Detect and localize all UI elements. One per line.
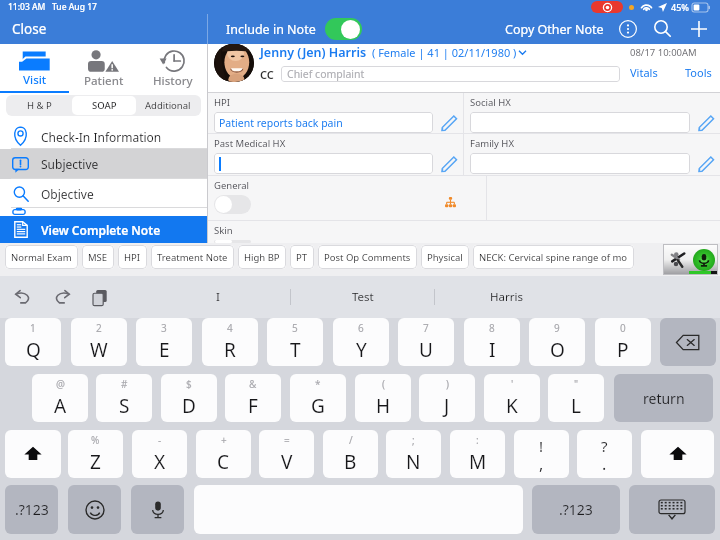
- button[interactable]: Visit: [0, 44, 69, 93]
- button[interactable]: /: [323, 430, 378, 478]
- button[interactable]: PT: [290, 245, 314, 269]
- staticText: Patient reports back pain: [219, 116, 343, 130]
- button[interactable]: Vitals: [630, 65, 658, 80]
- button[interactable]: Normal Exam: [5, 245, 78, 269]
- button[interactable]: #: [96, 374, 152, 422]
- button[interactable]: History: [138, 44, 207, 93]
- button[interactable]: .?123: [532, 485, 620, 534]
- button[interactable]: &: [225, 374, 281, 422]
- button[interactable]: Skin toggle: [214, 240, 251, 243]
- button[interactable]: (: [355, 374, 411, 422]
- staticText: ): [446, 377, 449, 391]
- staticText: +: [221, 433, 227, 447]
- staticText: Objective: [41, 186, 94, 202]
- staticText: #: [121, 377, 128, 391]
- button[interactable]: 2: [71, 318, 127, 366]
- button[interactable]: Dictation: [663, 244, 718, 275]
- button[interactable]: More options: [618, 19, 638, 39]
- staticText: PT: [296, 251, 308, 264]
- button[interactable]: 6: [333, 318, 389, 366]
- button[interactable]: Edit Past Medical HX: [439, 154, 459, 174]
- button[interactable]: Edit Family HX: [696, 154, 716, 174]
- button[interactable]: 4: [202, 318, 258, 366]
- button[interactable]: +: [196, 430, 251, 478]
- button[interactable]: 5: [267, 318, 323, 366]
- button[interactable]: 3: [136, 318, 192, 366]
- button[interactable]: Paste: [88, 286, 110, 308]
- staticText: Physical: [427, 251, 463, 264]
- button[interactable]: return: [614, 374, 713, 422]
- button[interactable]: Include in Note: [222, 15, 366, 43]
- button[interactable]: Edit HPI: [439, 113, 459, 133]
- staticText: F: [248, 393, 258, 419]
- button[interactable]: *: [290, 374, 346, 422]
- button[interactable]: $: [161, 374, 217, 422]
- button[interactable]: !: [514, 430, 569, 478]
- button[interactable]: [470, 153, 690, 174]
- staticText: MSE: [88, 251, 108, 264]
- button[interactable]: ): [419, 374, 475, 422]
- staticText: return: [643, 389, 685, 408]
- button[interactable]: Shift: [5, 430, 61, 478]
- button[interactable]: Objective: [0, 179, 207, 208]
- button[interactable]: Shift: [641, 430, 714, 478]
- button[interactable]: 7: [398, 318, 454, 366]
- button[interactable]: Test: [291, 276, 434, 318]
- button[interactable]: 1: [5, 318, 61, 366]
- button[interactable]: Post Op Comments: [318, 245, 417, 269]
- button[interactable]: .?123: [5, 485, 58, 534]
- button[interactable]: @: [32, 374, 88, 422]
- staticText: 3: [161, 321, 167, 335]
- button[interactable]: Dictate: [131, 485, 184, 534]
- button[interactable]: ?: [577, 430, 632, 478]
- button[interactable]: Chief complaint: [281, 66, 620, 82]
- button[interactable]: ": [548, 374, 604, 422]
- button[interactable]: Patient reports back pain: [214, 112, 433, 133]
- button[interactable]: Backspace: [660, 318, 716, 366]
- button[interactable]: SOAP: [72, 96, 136, 115]
- button[interactable]: Hide keyboard: [629, 485, 715, 534]
- staticText: M: [469, 449, 487, 475]
- button[interactable]: Check-In Information: [0, 124, 207, 149]
- button[interactable]: ': [484, 374, 540, 422]
- button[interactable]: HPI: [118, 245, 147, 269]
- staticText: P: [617, 337, 629, 363]
- button[interactable]: Tools: [685, 65, 712, 80]
- button[interactable]: Harris: [435, 276, 578, 318]
- button[interactable]: Physical: [421, 245, 469, 269]
- button[interactable]: I: [146, 276, 290, 318]
- staticText: U: [419, 337, 433, 363]
- button[interactable]: [470, 112, 690, 133]
- button[interactable]: Patient: [69, 44, 138, 93]
- staticText: 0: [620, 321, 626, 335]
- button[interactable]: :: [450, 430, 505, 478]
- button[interactable]: 0: [595, 318, 651, 366]
- button[interactable]: Add: [688, 18, 710, 40]
- button[interactable]: 8: [464, 318, 520, 366]
- button[interactable]: Additional: [136, 96, 200, 115]
- staticText: 08/17 10:00AM: [630, 46, 697, 59]
- button[interactable]: NECK: Cervical spine range of mo: [473, 245, 634, 269]
- button[interactable]: =: [259, 430, 314, 478]
- button[interactable]: Treatment Note: [151, 245, 234, 269]
- button[interactable]: Copy Other Note: [501, 18, 608, 41]
- button[interactable]: High BP: [238, 245, 286, 269]
- button[interactable]: MSE: [82, 245, 114, 269]
- button[interactable]: [214, 153, 433, 174]
- staticText: Jenny (Jen) Harris: [260, 44, 367, 61]
- button[interactable]: 9: [529, 318, 585, 366]
- button[interactable]: Undo: [12, 286, 34, 308]
- button[interactable]: Search: [652, 18, 674, 40]
- button[interactable]: Emoji: [68, 485, 121, 534]
- button[interactable]: View Complete Note: [0, 216, 207, 243]
- button[interactable]: Edit Social HX: [696, 113, 716, 133]
- button[interactable]: Close: [0, 14, 207, 44]
- button[interactable]: Subjective: [0, 149, 207, 179]
- button[interactable]: H & P: [7, 96, 72, 115]
- button[interactable]: General toggle: [214, 195, 251, 214]
- button[interactable]: -: [132, 430, 187, 478]
- button[interactable]: ;: [386, 430, 441, 478]
- button[interactable]: %: [68, 430, 123, 478]
- button[interactable]: Redo: [50, 286, 72, 308]
